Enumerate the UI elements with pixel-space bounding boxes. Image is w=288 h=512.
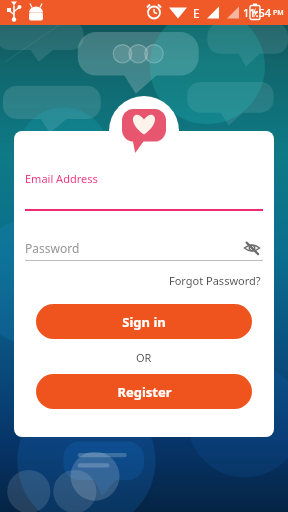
staticText: OR	[136, 350, 152, 365]
staticText: Email Address	[25, 171, 98, 186]
button[interactable]: Password	[25, 235, 263, 261]
staticText: Sign in	[122, 313, 166, 331]
staticText: PM	[273, 8, 284, 18]
staticText: Password	[25, 240, 80, 256]
staticText: E	[193, 5, 200, 21]
staticText: Forgot Password?	[169, 273, 261, 288]
button[interactable]: Show password	[241, 237, 263, 259]
button[interactable]: Forgot Password?	[167, 271, 263, 290]
button[interactable]: Email Address	[25, 171, 263, 211]
staticText: Register	[117, 383, 172, 401]
button[interactable]: Sign in	[36, 304, 252, 339]
button[interactable]: Register	[36, 374, 252, 409]
staticText: 11:54	[243, 5, 272, 20]
